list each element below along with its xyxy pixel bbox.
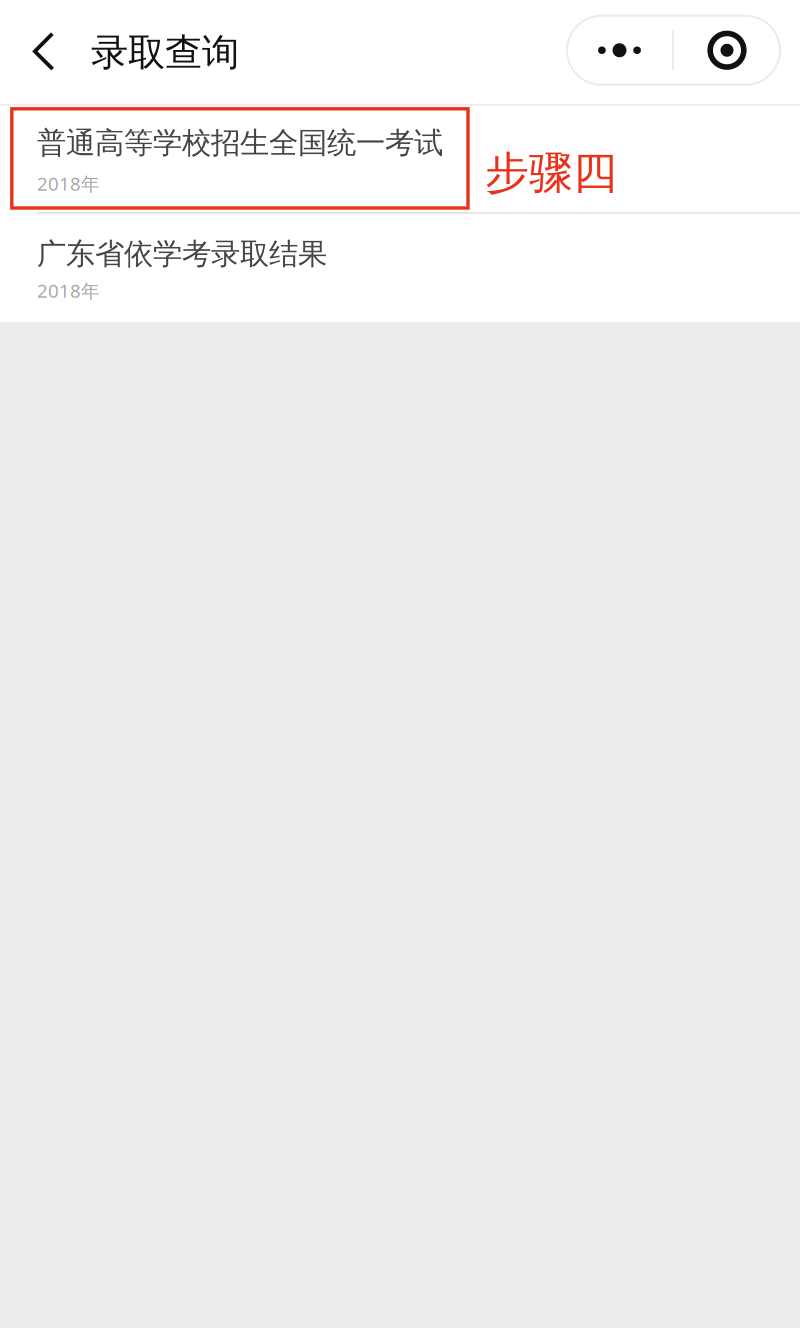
staticText: 广东省依学考录取结果 — [37, 236, 327, 272]
button[interactable]: Back — [0, 0, 53, 69]
staticText: 录取查询 — [91, 30, 239, 76]
button[interactable]: 普通高等学校招生全国统一考试 — [0, 106, 800, 212]
staticText: 步骤四 — [485, 146, 617, 200]
staticText: 2018年 — [37, 171, 100, 196]
button[interactable]: More options and close mini program — [567, 16, 780, 85]
staticText: 普通高等学校招生全国统一考试 — [37, 125, 443, 161]
button[interactable]: 广东省依学考录取结果 — [0, 214, 800, 322]
staticText: 2018年 — [37, 278, 100, 303]
